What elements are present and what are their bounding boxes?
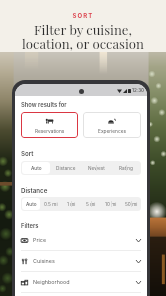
staticText: Filters — [21, 222, 39, 229]
staticText: Price — [33, 237, 47, 244]
button[interactable]: Neighborhood — [21, 272, 141, 292]
staticText: Neighborhood — [33, 279, 70, 286]
staticText: Rating — [119, 165, 133, 171]
staticText: Auto — [26, 201, 37, 207]
staticText: Experiences — [98, 128, 126, 134]
button[interactable]: Cuisines — [21, 251, 141, 271]
staticText: Newest — [88, 165, 105, 171]
staticText: Auto — [31, 165, 42, 171]
staticText: Show results for — [21, 101, 67, 108]
staticText: Distance — [56, 165, 76, 171]
staticText: Reservations — [35, 128, 65, 134]
button[interactable]: Auto — [22, 162, 50, 174]
button[interactable]: 5 mi — [82, 198, 100, 210]
button[interactable]: 10 mi — [102, 198, 120, 210]
button[interactable]: Auto — [22, 198, 40, 210]
button[interactable]: Rating — [112, 162, 140, 174]
staticText: Filter by cuisine, location, or occasion — [0, 21, 166, 52]
button[interactable]: Experiences — [83, 112, 141, 138]
staticText: 12:30 — [132, 88, 144, 94]
staticText: Sort — [21, 150, 34, 158]
button[interactable]: Newest — [82, 162, 110, 174]
staticText: 10 mi — [105, 201, 117, 207]
staticText: 50 mi — [125, 201, 138, 207]
button[interactable]: 1 mi — [62, 198, 80, 210]
button[interactable]: 50 mi — [122, 198, 140, 210]
button[interactable]: 0.5 mi — [42, 198, 60, 210]
staticText: 0.5 mi — [44, 201, 58, 207]
staticText: Distance — [21, 187, 48, 195]
button[interactable]: Reservations — [21, 112, 78, 138]
staticText: 1 mi — [67, 201, 76, 207]
button[interactable]: Distance — [52, 162, 80, 174]
staticText: 5 mi — [86, 201, 96, 207]
staticText: Cuisines — [33, 258, 55, 265]
staticText: SORT — [0, 12, 166, 19]
button[interactable]: Price — [21, 230, 141, 250]
